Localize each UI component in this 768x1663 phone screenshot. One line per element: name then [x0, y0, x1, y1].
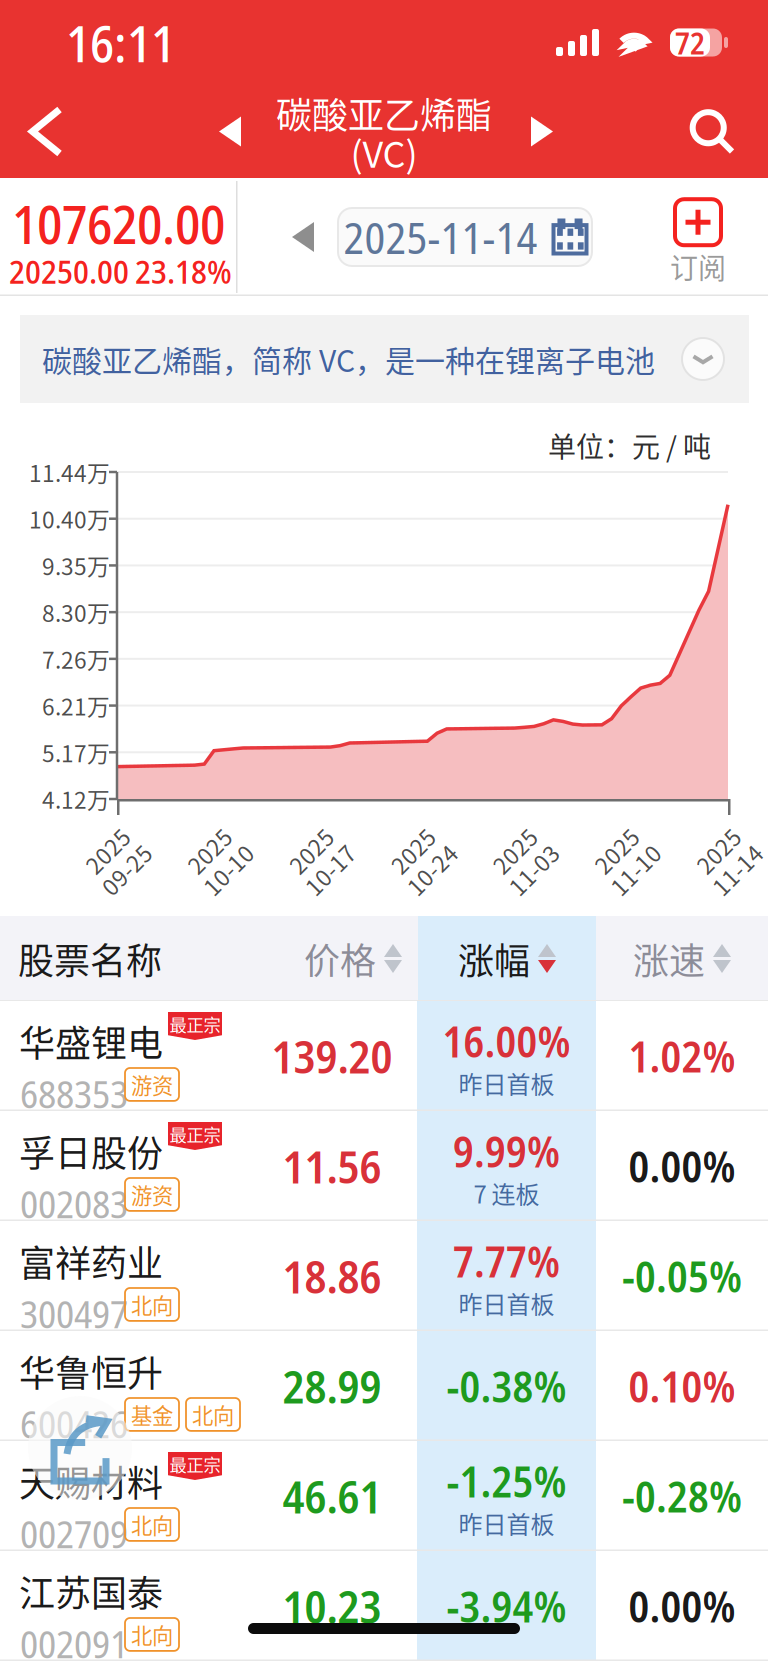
staticText: 北向: [131, 1289, 173, 1320]
staticText: 2025: [600, 830, 652, 863]
staticText: 7.77%: [453, 1232, 560, 1290]
staticText: 8.30万: [42, 596, 110, 628]
staticText: 涨幅: [458, 932, 530, 984]
button[interactable]: Previous: [196, 85, 264, 178]
staticText: 139.20: [271, 1025, 392, 1087]
staticText: 16.00%: [442, 1012, 570, 1070]
staticText: 18.86: [282, 1245, 381, 1307]
staticText: 富祥药业: [19, 1235, 163, 1287]
staticText: 46.61: [282, 1465, 381, 1527]
staticText: 20250.00: [9, 248, 129, 293]
button[interactable]: 华盛锂电: [0, 1001, 768, 1111]
staticText: 华盛锂电: [19, 1015, 163, 1067]
staticText: 600426: [20, 1397, 128, 1450]
staticText: 002091: [20, 1617, 128, 1663]
staticText: -0.05%: [622, 1247, 742, 1305]
staticText: 碳酸亚乙烯酯，简称 VC，是一种在锂离子电池: [42, 337, 655, 381]
button[interactable]: 天赐材料: [0, 1441, 768, 1551]
staticText: 0.00%: [628, 1137, 735, 1195]
staticText: 002709: [20, 1507, 128, 1560]
staticText: 10-10: [189, 857, 249, 890]
staticText: 游资: [131, 1179, 173, 1210]
button[interactable]: Previous day: [272, 206, 334, 268]
staticText: 天赐材料: [19, 1455, 163, 1507]
staticText: 价格: [304, 932, 376, 984]
button[interactable]: 价格: [288, 916, 418, 1001]
staticText: 16:11: [66, 8, 175, 77]
staticText: 7 连板: [473, 1176, 539, 1210]
staticText: 碳酸亚乙烯酯: [276, 87, 492, 139]
staticText: 华鲁恒升: [19, 1345, 163, 1397]
staticText: 最正宗: [169, 1011, 220, 1037]
staticText: 107620.00: [12, 187, 225, 260]
staticText: 9.35万: [42, 549, 110, 582]
staticText: 2025: [91, 830, 143, 863]
staticText: 11.56: [282, 1135, 381, 1197]
staticText: 单位：元 / 吨: [548, 425, 711, 465]
staticText: 7.26万: [42, 642, 110, 675]
staticText: 11-10: [596, 857, 656, 890]
button[interactable]: Back: [0, 85, 92, 178]
staticText: -0.28%: [622, 1467, 742, 1525]
staticText: 10.23: [282, 1575, 381, 1637]
staticText: 09-25: [87, 857, 147, 890]
staticText: 北向: [131, 1509, 173, 1540]
staticText: 10.40万: [29, 502, 110, 535]
button[interactable]: 富祥药业: [0, 1221, 768, 1331]
staticText: 股票名称: [18, 932, 162, 984]
staticText: 基金: [131, 1399, 173, 1430]
button[interactable]: 订阅: [646, 200, 750, 286]
staticText: 11-14: [698, 857, 758, 890]
staticText: 北向: [192, 1399, 234, 1430]
staticText: 2025: [396, 830, 448, 863]
staticText: 5.17万: [42, 736, 110, 769]
button[interactable]: 江苏国泰: [0, 1551, 768, 1661]
staticText: 昨日首板: [458, 1066, 554, 1100]
staticText: 9.99%: [453, 1122, 560, 1180]
staticText: 2025-11-14: [343, 207, 537, 267]
staticText: 最正宗: [169, 1451, 220, 1477]
button[interactable]: 2025-11-14: [338, 208, 592, 266]
staticText: 昨日首板: [458, 1506, 554, 1540]
staticText: 江苏国泰: [19, 1565, 163, 1617]
staticText: 0.00%: [628, 1577, 735, 1635]
staticText: 6.21万: [42, 689, 110, 722]
button[interactable]: 华鲁恒升: [0, 1331, 768, 1441]
staticText: 4.12万: [42, 783, 110, 815]
staticText: 300497: [20, 1287, 128, 1340]
staticText: 2025: [295, 830, 347, 863]
staticText: 2025: [702, 830, 754, 863]
button[interactable]: 涨幅: [418, 916, 596, 1001]
staticText: 10-17: [291, 857, 351, 890]
staticText: 1.02%: [628, 1027, 735, 1085]
staticText: (VC): [350, 126, 417, 178]
button[interactable]: 孚日股份: [0, 1111, 768, 1221]
staticText: 游资: [131, 1069, 173, 1100]
staticText: -1.25%: [446, 1452, 566, 1510]
button[interactable]: Next: [508, 85, 576, 178]
staticText: 2025: [193, 830, 245, 863]
staticText: 昨日首板: [458, 1286, 554, 1320]
staticText: 10-24: [392, 857, 452, 890]
staticText: 11-03: [494, 857, 554, 890]
staticText: -0.38%: [446, 1357, 566, 1415]
staticText: 28.99: [282, 1355, 381, 1417]
staticText: 002083: [20, 1177, 128, 1230]
staticText: 最正宗: [169, 1121, 220, 1147]
button[interactable]: Share: [28, 1396, 132, 1500]
staticText: 11.44万: [29, 456, 110, 488]
staticText: 2025: [498, 830, 550, 863]
staticText: -3.94%: [446, 1577, 566, 1635]
staticText: 涨速: [633, 932, 705, 984]
staticText: 72: [675, 22, 705, 63]
staticText: 北向: [131, 1619, 173, 1650]
staticText: 0.10%: [628, 1357, 735, 1415]
button[interactable]: Search: [664, 85, 760, 178]
staticText: 订阅: [670, 246, 726, 287]
staticText: 688353: [20, 1067, 128, 1120]
button[interactable]: 涨速: [596, 916, 768, 1001]
staticText: 23.18%: [135, 248, 232, 293]
staticText: 孚日股份: [19, 1125, 163, 1177]
